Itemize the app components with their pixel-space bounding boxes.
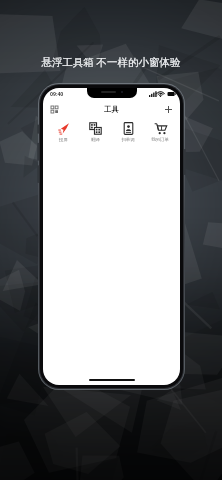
button[interactable]: 翻译 — [80, 121, 110, 144]
button[interactable]: 投屏 — [48, 121, 78, 144]
staticText: 翻译 — [91, 137, 100, 143]
staticText: 投屏 — [59, 137, 68, 143]
button[interactable]: 扫单词 — [113, 121, 143, 144]
staticText: 悬浮工具箱 不一样的小窗体验 — [41, 55, 181, 69]
staticText: 我的订单 — [151, 137, 169, 143]
button[interactable]: 添加 — [162, 103, 175, 116]
button[interactable]: 分类 — [48, 103, 61, 116]
staticText: 工具 — [104, 105, 119, 114]
button[interactable]: 我的订单 — [145, 121, 175, 144]
staticText: 09:40 — [50, 90, 64, 97]
staticText: 扫单词 — [121, 137, 135, 143]
